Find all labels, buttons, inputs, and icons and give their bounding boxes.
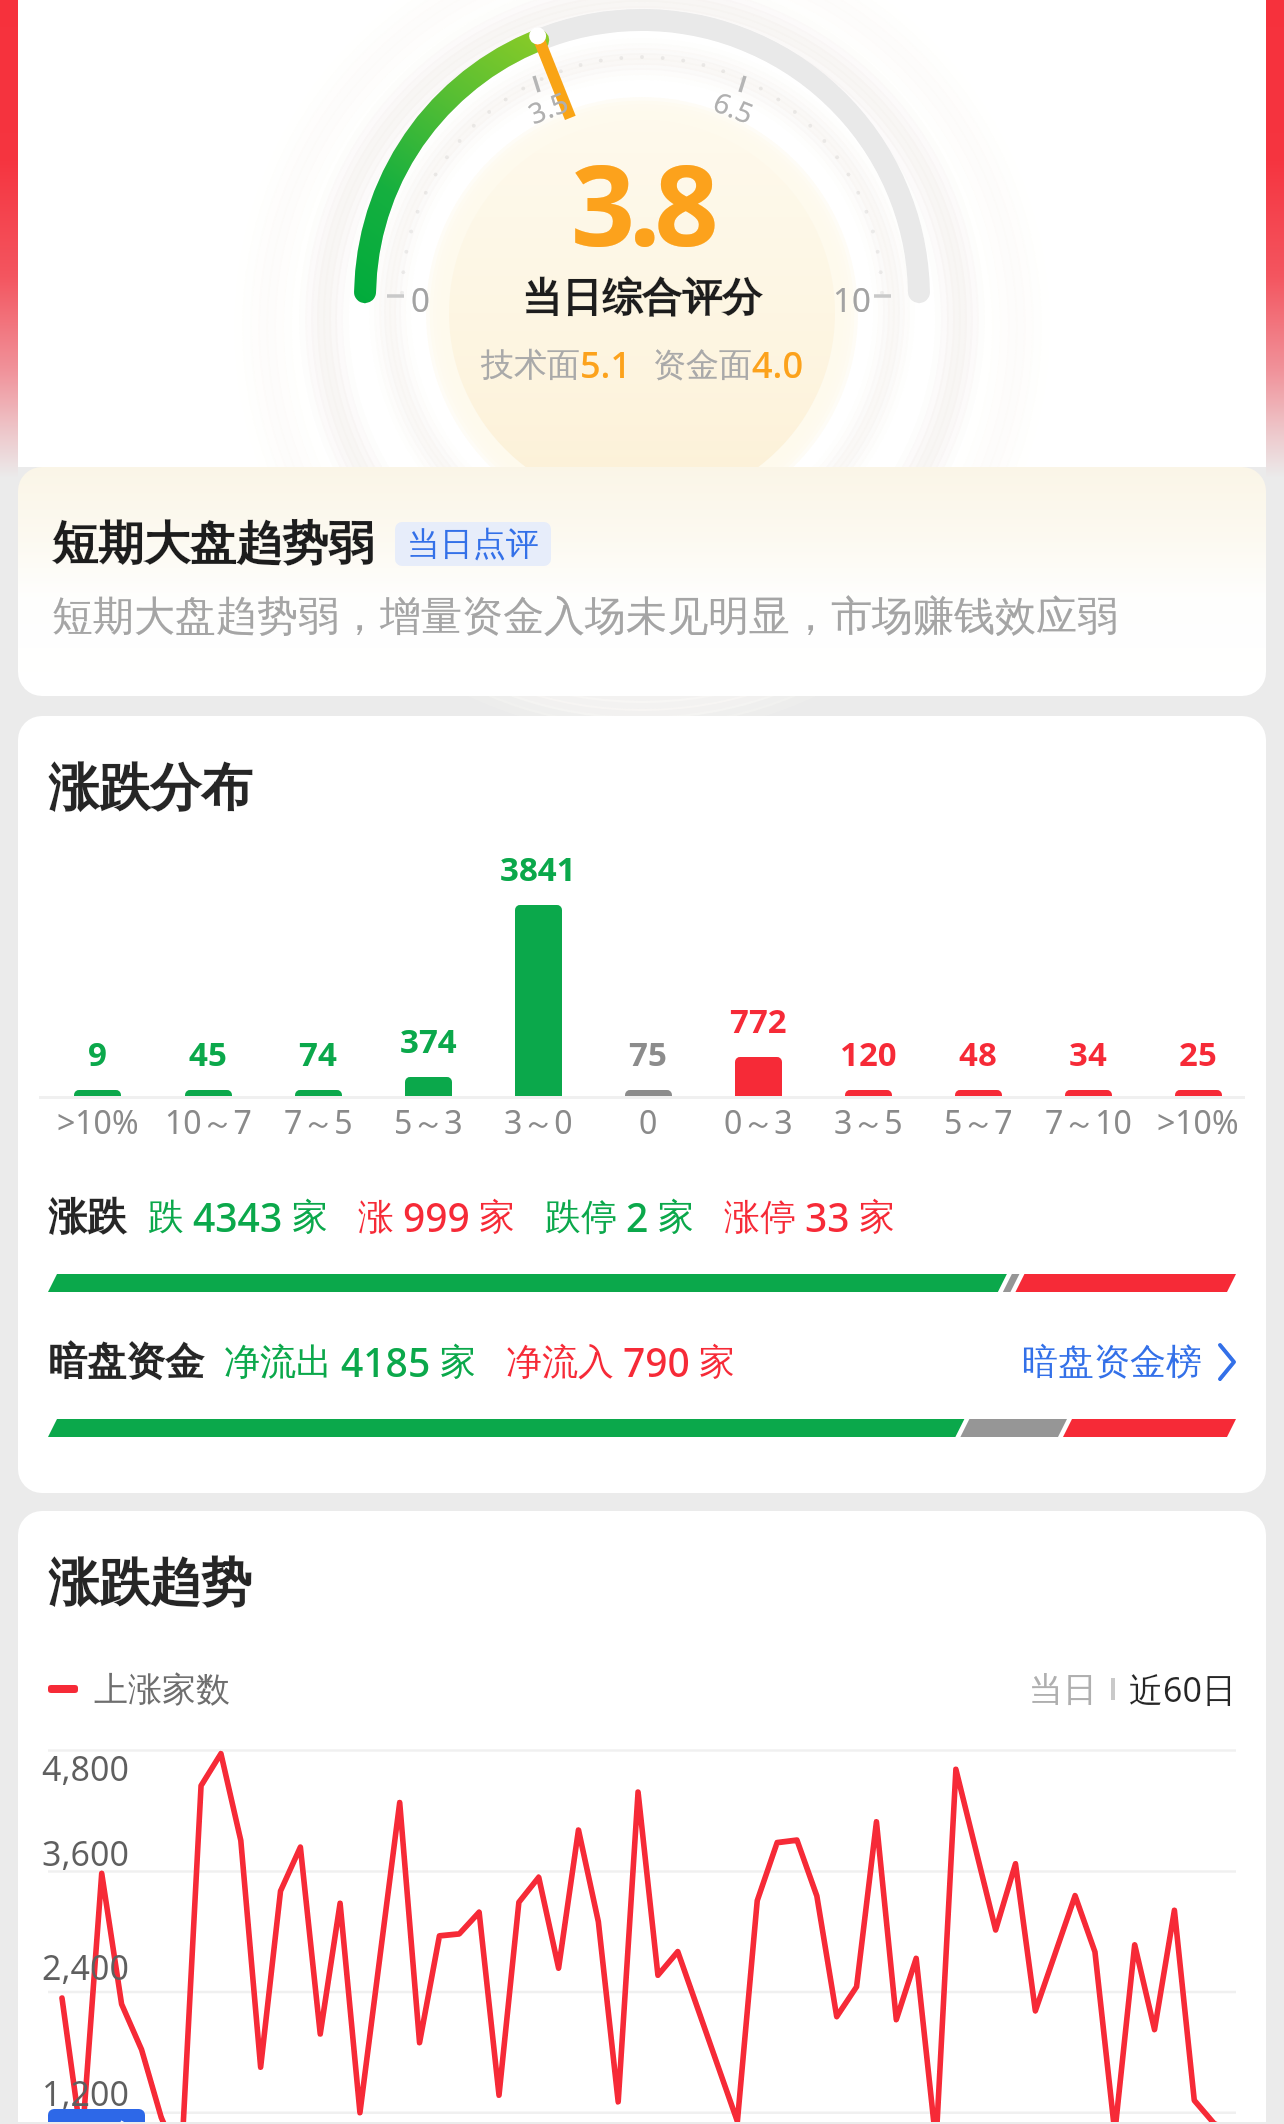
staticText: 涨停 (724, 1194, 796, 1239)
staticText: 净流入 (506, 1339, 614, 1384)
staticText: 772 (730, 998, 787, 1043)
staticText: 34 (1069, 1031, 1107, 1076)
button[interactable]: 涨跌趋势 (18, 1511, 1266, 2122)
staticText: 3,600 (42, 1830, 129, 1876)
button[interactable]: 短期大盘趋势弱 (18, 467, 1266, 696)
staticText: 3841 (500, 846, 576, 891)
staticText: 4185 (341, 1335, 431, 1388)
button[interactable]: 当日 (1029, 1668, 1097, 1711)
staticText: 374 (400, 1018, 457, 1063)
staticText: 0 (639, 1100, 658, 1144)
button[interactable]: 暗盘资金榜 (1022, 1339, 1236, 1384)
staticText: 家 (440, 1339, 476, 1384)
staticText: 4.0 (752, 340, 803, 389)
staticText: 0～3 (724, 1100, 793, 1144)
staticText: 74 (299, 1031, 337, 1076)
staticText: 涨 (358, 1194, 394, 1239)
staticText: 资金面 (653, 344, 752, 386)
staticText: 1,200 (42, 2070, 129, 2116)
staticText: 技术面 (481, 344, 580, 386)
staticText: 上涨家数 (94, 1668, 230, 1711)
staticText: 暗盘资金榜 (1022, 1339, 1202, 1384)
staticText: 4,800 (42, 1745, 129, 1791)
staticText: 跌停 (545, 1194, 617, 1239)
staticText: 家 (292, 1194, 328, 1239)
staticText: 3.5 (522, 82, 574, 132)
staticText: 4343 (193, 1190, 283, 1243)
staticText: 7～5 (284, 1100, 353, 1144)
staticText: 家 (699, 1339, 735, 1384)
staticText: 暗盘资金 (48, 1337, 204, 1386)
staticText: 48 (959, 1031, 997, 1076)
staticText: 短期大盘趋势弱，增量资金入场未见明显，市场赚钱效应弱 (52, 591, 1118, 643)
staticText: 3～5 (834, 1100, 903, 1144)
staticText: 当日点评 (407, 523, 539, 565)
staticText: 3～0 (504, 1100, 573, 1144)
staticText: 家 (658, 1194, 694, 1239)
staticText: 75 (629, 1031, 667, 1076)
staticText: 9 (88, 1031, 107, 1076)
staticText: 790 (623, 1335, 690, 1388)
button[interactable]: 近60日 (1129, 1666, 1236, 1712)
staticText: 33 (805, 1190, 850, 1243)
staticText: 当日综合评分 (522, 272, 762, 322)
staticText: 涨跌 (48, 1192, 126, 1241)
staticText: 跌 (148, 1194, 184, 1239)
staticText: 0 (411, 277, 430, 322)
staticText: 999家 (53, 2114, 140, 2122)
staticText: 5～3 (394, 1100, 463, 1144)
staticText: 10 (833, 277, 871, 322)
staticText: 120 (840, 1031, 897, 1076)
staticText: 5～7 (944, 1100, 1013, 1144)
staticText: 短期大盘趋势弱 (52, 515, 374, 573)
staticText: 净流出 (224, 1339, 332, 1384)
staticText: >10% (1157, 1100, 1239, 1144)
staticText: 25 (1179, 1031, 1217, 1076)
staticText: 涨跌分布 (48, 756, 252, 820)
staticText: 涨跌趋势 (48, 1551, 252, 1615)
staticText: 6.5 (708, 82, 760, 132)
staticText: 近60日 (1129, 1666, 1236, 1712)
staticText: 999 (403, 1190, 470, 1243)
staticText: 家 (479, 1194, 515, 1239)
staticText: 3.8 (571, 126, 713, 279)
staticText: 5.1 (580, 340, 631, 389)
staticText: 10～7 (165, 1100, 252, 1144)
button[interactable]: 涨跌分布 (18, 716, 1266, 1493)
staticText: 家 (859, 1194, 895, 1239)
staticText: 当日 (1029, 1668, 1097, 1711)
staticText: 45 (189, 1031, 227, 1076)
staticText: 7～10 (1045, 1100, 1132, 1144)
staticText: >10% (57, 1100, 139, 1144)
staticText: 2 (626, 1190, 649, 1243)
staticText: 2,400 (42, 1944, 129, 1990)
